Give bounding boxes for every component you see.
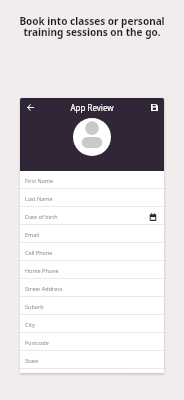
button[interactable]: Date of birth — [20, 207, 164, 225]
button[interactable]: Save — [146, 100, 162, 115]
staticText: Cell Phone — [25, 249, 53, 256]
button[interactable]: Subarb — [20, 297, 164, 315]
staticText: State — [25, 357, 39, 364]
staticText: Book into classes or personal training s… — [0, 14, 184, 39]
button[interactable]: First Name — [20, 171, 164, 189]
staticText: Email — [25, 231, 40, 238]
staticText: First Name — [25, 177, 54, 184]
staticText: Postcode — [25, 339, 49, 346]
staticText: City — [25, 321, 35, 328]
staticText: Home Phone — [25, 267, 59, 274]
staticText: App Review — [38, 102, 146, 113]
button[interactable]: City — [20, 315, 164, 333]
button[interactable]: Home Phone — [20, 261, 164, 279]
button[interactable]: Email — [20, 225, 164, 243]
button[interactable]: Last Name — [20, 189, 164, 207]
button[interactable]: State — [20, 351, 164, 369]
button[interactable]: Back — [22, 100, 38, 115]
staticText: Last Name — [25, 195, 53, 202]
button[interactable]: Postcode — [20, 333, 164, 351]
staticText: Street Address — [25, 285, 63, 292]
button[interactable]: Cell Phone — [20, 243, 164, 261]
staticText: Date of birth — [25, 213, 58, 220]
staticText: Subarb — [25, 303, 44, 310]
button[interactable]: Street Address — [20, 279, 164, 297]
